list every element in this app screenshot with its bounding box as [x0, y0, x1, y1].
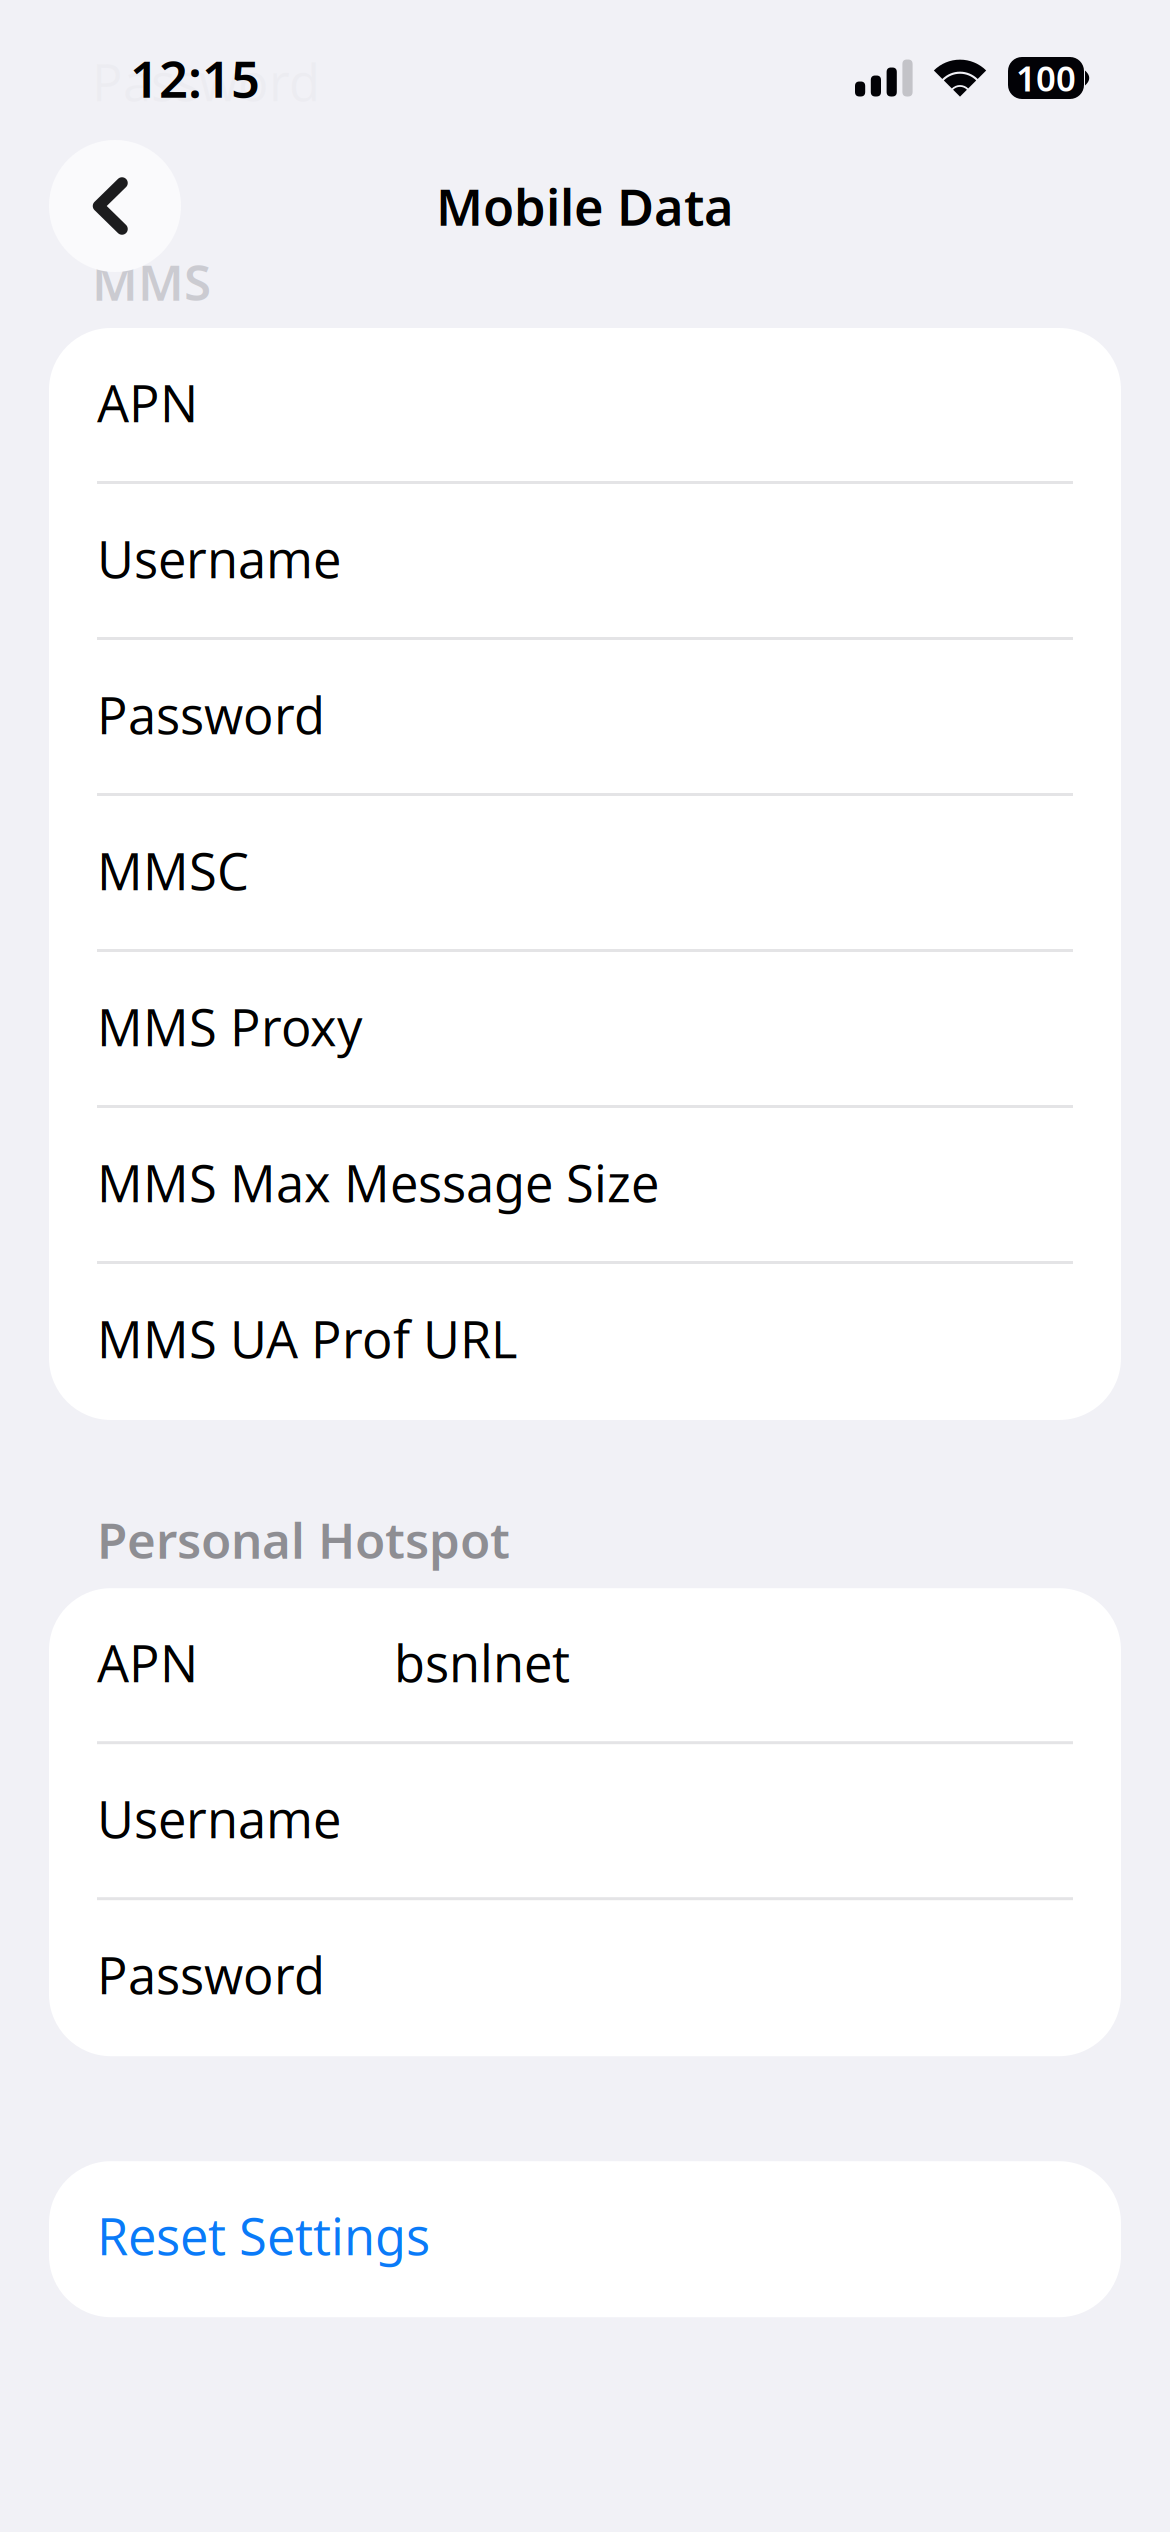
staticText: APN [97, 1628, 198, 1697]
staticText: bsnlnet [394, 1628, 570, 1697]
button[interactable]: Password [49, 640, 1121, 796]
button[interactable]: Reset Settings [49, 2161, 1121, 2317]
staticText: MMSC [97, 836, 249, 905]
staticText: Username [97, 1784, 341, 1853]
button[interactable]: Password [49, 1900, 1121, 2056]
button[interactable]: MMSC [49, 796, 1121, 952]
button[interactable]: APN [49, 1588, 1121, 1744]
staticText: Password [97, 680, 325, 749]
staticText: MMS Max Message Size [97, 1148, 659, 1217]
button[interactable]: MMS UA Prof URL [49, 1264, 1121, 1420]
staticText: Personal Hotspot [97, 1506, 510, 1573]
staticText: APN [97, 368, 198, 437]
staticText: MMS Proxy [97, 992, 362, 1061]
staticText: 12:15 [130, 43, 260, 112]
staticText: MMS UA Prof URL [97, 1304, 517, 1373]
button[interactable]: MMS Max Message Size [49, 1108, 1121, 1264]
staticText: Username [97, 524, 341, 593]
staticText: 100 [1016, 54, 1076, 102]
button[interactable]: MMS Proxy [49, 952, 1121, 1108]
staticText: Reset Settings [97, 2201, 430, 2270]
button[interactable]: Back [49, 140, 181, 272]
staticText: Password [97, 1940, 325, 2009]
button[interactable]: Username [49, 1744, 1121, 1900]
staticText: MMS [92, 248, 211, 315]
staticText: Password [92, 47, 320, 116]
staticText: Mobile Data [436, 171, 734, 240]
button[interactable]: APN [49, 328, 1121, 484]
button[interactable]: Username [49, 484, 1121, 640]
